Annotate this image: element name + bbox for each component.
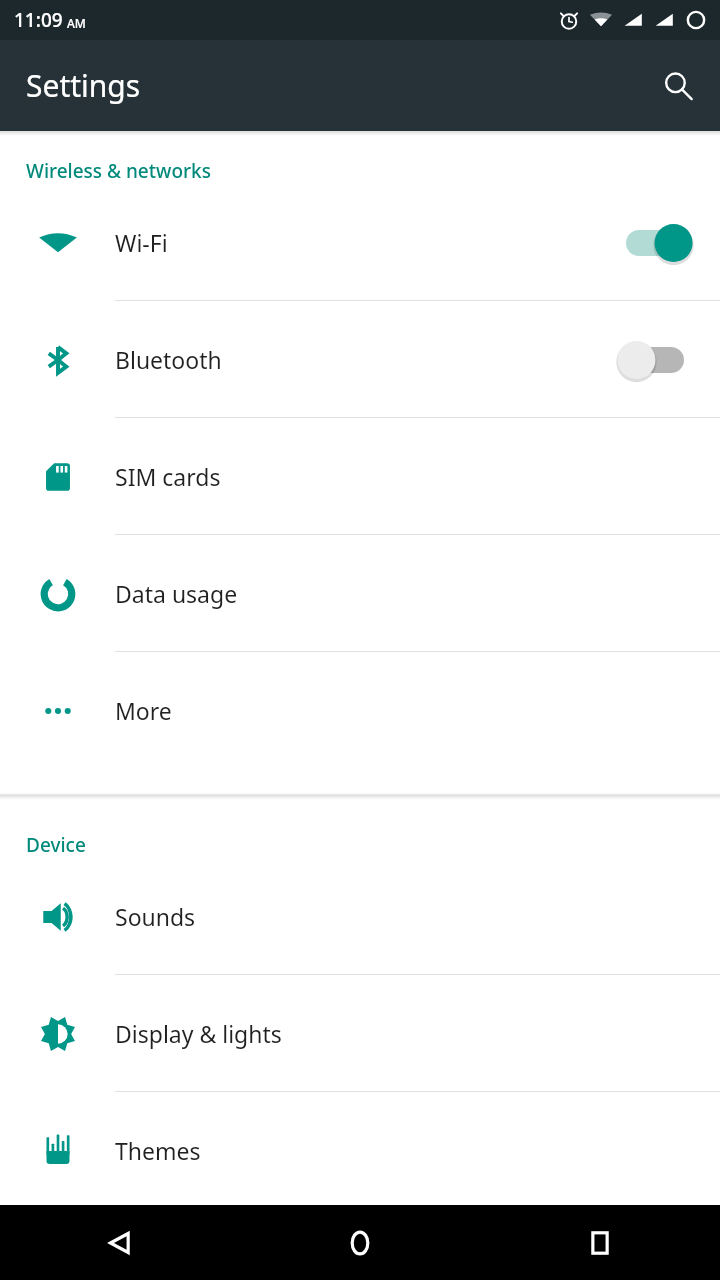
- button[interactable]: [616, 218, 694, 268]
- button[interactable]: Recent apps: [480, 1205, 720, 1280]
- staticText: Bluetooth: [115, 344, 616, 375]
- staticText: Themes: [115, 1135, 694, 1166]
- staticText: AM: [67, 15, 86, 31]
- button[interactable]: Search: [650, 58, 706, 114]
- button[interactable]: Sounds: [0, 858, 720, 975]
- button[interactable]: Bluetooth: [0, 301, 720, 418]
- staticText: Display & lights: [115, 1018, 694, 1049]
- button[interactable]: Themes: [0, 1092, 720, 1209]
- button[interactable]: Home: [240, 1205, 480, 1280]
- staticText: Wireless & networks: [26, 158, 211, 184]
- staticText: More: [115, 695, 694, 726]
- staticText: Device: [26, 832, 86, 858]
- button[interactable]: More: [0, 652, 720, 769]
- button[interactable]: Back: [0, 1205, 240, 1280]
- button[interactable]: [616, 335, 694, 385]
- button[interactable]: Wi-Fi: [0, 184, 720, 301]
- button[interactable]: Data usage: [0, 535, 720, 652]
- staticText: Settings: [26, 65, 141, 106]
- staticText: SIM cards: [115, 461, 694, 492]
- button[interactable]: SIM cards: [0, 418, 720, 535]
- staticText: Sounds: [115, 901, 694, 932]
- button[interactable]: Display & lights: [0, 975, 720, 1092]
- staticText: Wi-Fi: [115, 227, 616, 258]
- staticText: 11:09: [14, 7, 63, 33]
- staticText: Data usage: [115, 578, 694, 609]
